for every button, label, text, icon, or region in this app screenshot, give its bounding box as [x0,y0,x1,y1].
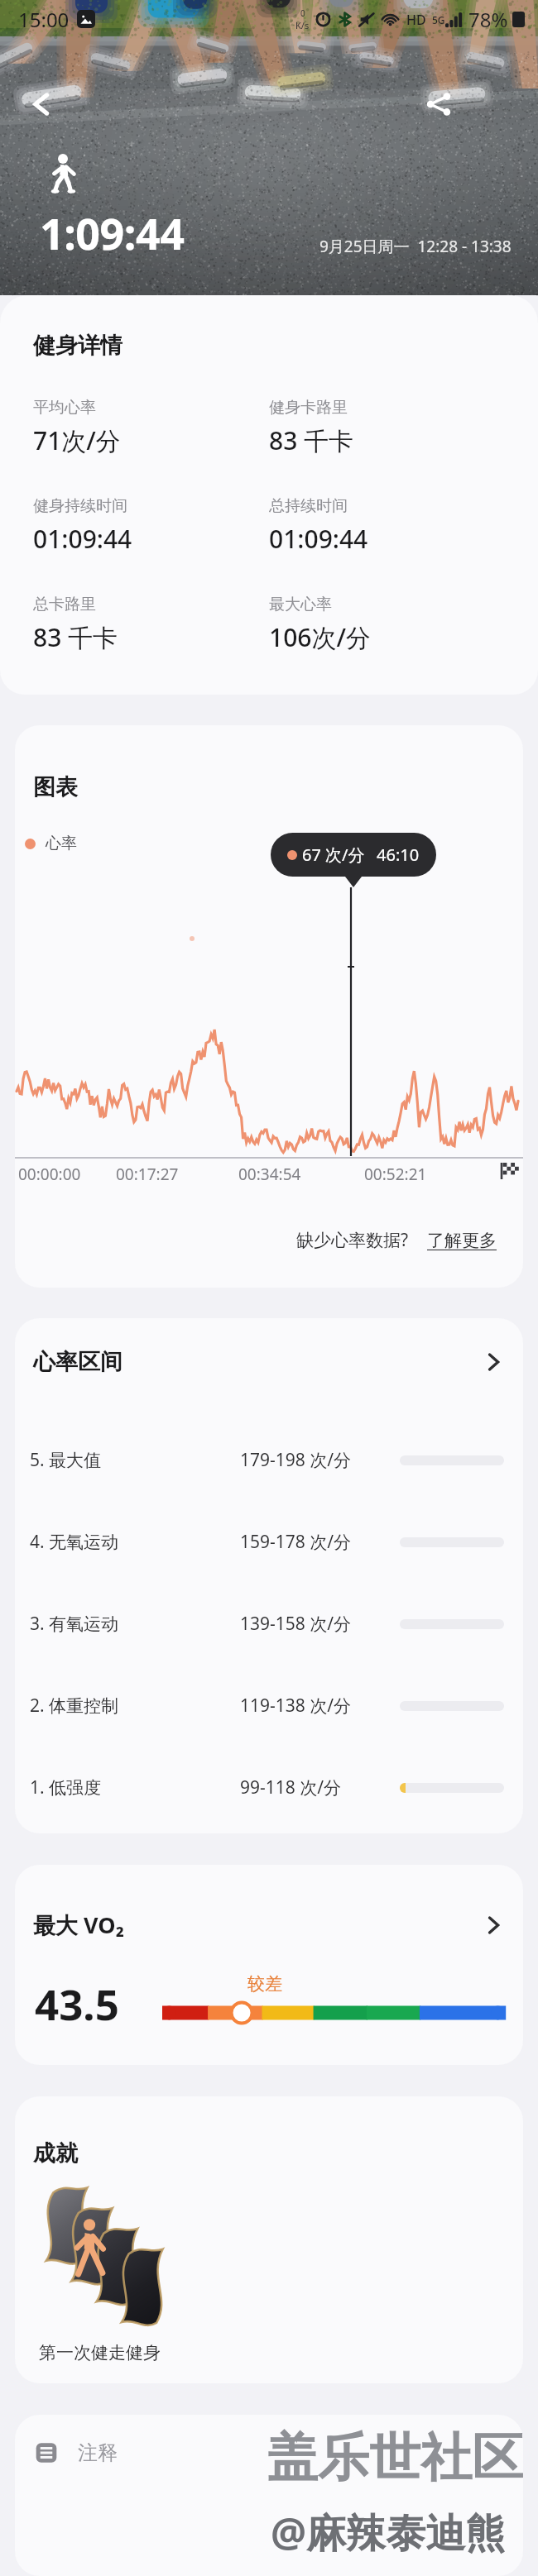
staticText: 159-178 次/分 [240,1530,400,1554]
staticText: @麻辣泰迪熊 [271,2505,506,2559]
staticText: 00:34:54 [238,1164,301,1185]
staticText: 9月25日周一 12:28 - 13:38 [319,236,512,257]
staticText: 图表 [33,773,78,801]
staticText: 67 次/分 [302,844,365,866]
staticText: 00:00:00 [18,1164,81,1185]
staticText: 最大 VO₂ [33,1909,124,1940]
staticText: 1:09:44 [40,203,185,262]
staticText: 最大心率 [269,595,332,614]
staticText: 平均心率 [33,398,96,418]
staticText: 健身详情 [33,332,122,360]
staticText: HD [406,11,426,29]
staticText: 179-198 次/分 [240,1448,400,1472]
staticText: K/s [295,19,310,31]
staticText: 01:09:44 [269,522,368,556]
staticText: 盖乐世社区 [267,2425,523,2490]
staticText: 5G [432,13,445,26]
staticText: 注释 [78,2440,118,2465]
button[interactable]: 1. 低强度 [15,1747,523,1828]
button[interactable]: 了解更多 [427,1230,497,1251]
staticText: 4. 无氧运动 [30,1530,240,1554]
staticText: 83 千卡 [269,423,354,457]
staticText: 99-118 次/分 [240,1775,400,1799]
button[interactable]: 4. 无氧运动 [15,1501,523,1583]
staticText: 较差 [247,1973,282,1995]
staticText: 00:17:27 [116,1164,179,1185]
staticText: 78% [468,6,508,33]
staticText: 83 千卡 [33,620,118,654]
staticText: 01:09:44 [33,522,132,556]
staticText: 139-158 次/分 [240,1612,400,1636]
staticText: 健身卡路里 [269,398,348,418]
button[interactable]: 2. 体重控制 [15,1665,523,1747]
staticText: 3. 有氧运动 [30,1612,240,1636]
staticText: 106次/分 [269,620,372,654]
staticText: 15:00 [18,6,70,33]
staticText: 00:52:21 [364,1164,427,1185]
button[interactable]: Back [17,79,66,129]
staticText: 1. 低强度 [30,1775,240,1799]
staticText: 46:10 [377,844,420,866]
staticText: 5. 最大值 [30,1448,240,1472]
button[interactable]: 3. 有氧运动 [15,1583,523,1665]
staticText: 119-138 次/分 [240,1694,400,1718]
staticText: 总持续时间 [269,496,348,516]
staticText: 71次/分 [33,423,121,457]
staticText: 0 [300,7,305,19]
button[interactable]: 心率区间 [15,1343,523,1381]
button[interactable]: 最大 VO₂ [15,1906,523,1943]
staticText: 健身持续时间 [33,496,127,516]
staticText: 第一次健走健身 [39,2342,161,2363]
button[interactable]: Share [414,79,464,129]
staticText: 缺少心率数据? [296,1228,409,1252]
staticText: 心率 [46,834,77,853]
button[interactable]: 5. 最大值 [15,1419,523,1501]
staticText: 成就 [33,2139,78,2167]
staticText: 总卡路里 [33,595,96,614]
staticText: 43.5 [35,1975,119,2032]
staticText: 了解更多 [427,1230,497,1251]
staticText: 2. 体重控制 [30,1694,240,1718]
staticText: 心率区间 [33,1348,122,1376]
button[interactable]: 注释 [15,2415,523,2490]
